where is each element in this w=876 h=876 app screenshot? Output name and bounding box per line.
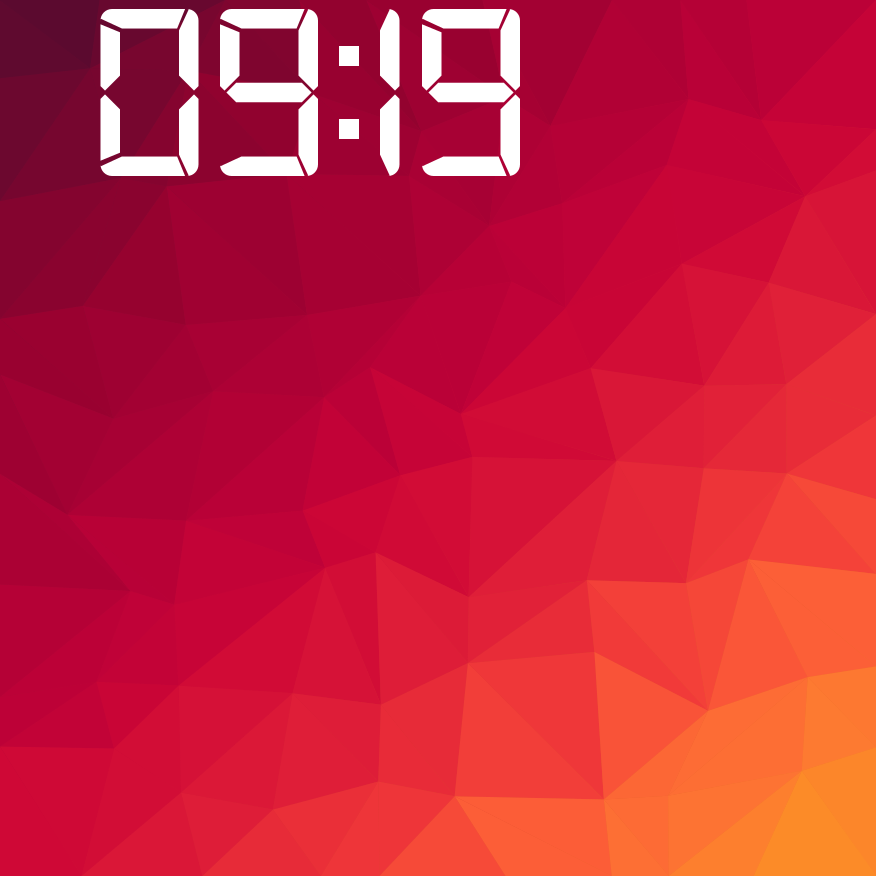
- button[interactable]: 9:19: [0, 0, 876, 876]
